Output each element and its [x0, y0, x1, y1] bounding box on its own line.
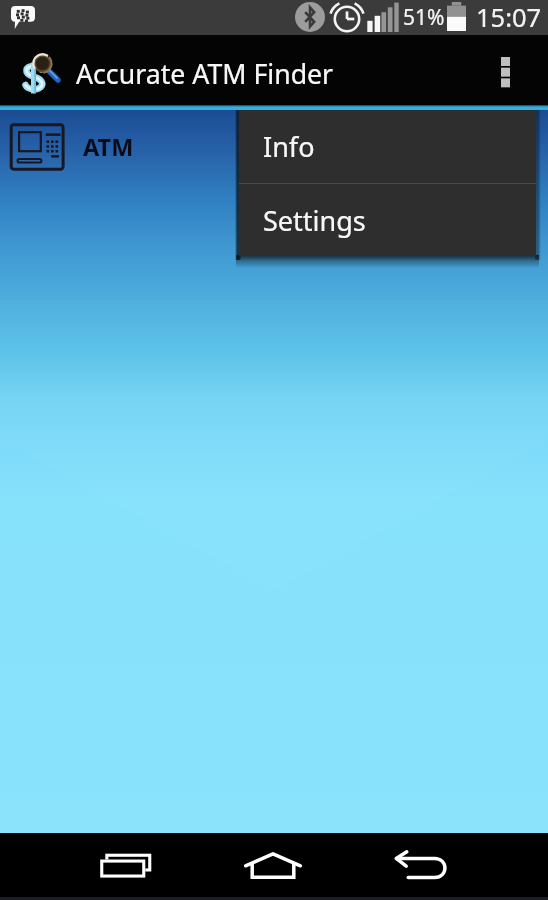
staticText: Accurate ATM Finder — [76, 55, 334, 91]
button[interactable]: ATM — [0, 110, 548, 186]
staticText: 51% — [403, 3, 445, 32]
staticText: Info — [263, 128, 315, 165]
button[interactable]: Recent apps — [100, 853, 152, 879]
button[interactable]: More options — [478, 35, 534, 105]
button[interactable]: Settings — [239, 184, 536, 256]
staticText: 15:07 — [476, 0, 542, 35]
staticText: ATM — [83, 131, 134, 163]
button[interactable]: Info — [239, 110, 536, 183]
button[interactable]: Home — [244, 852, 302, 879]
button[interactable]: Back — [395, 851, 447, 879]
staticText: Settings — [263, 202, 366, 239]
